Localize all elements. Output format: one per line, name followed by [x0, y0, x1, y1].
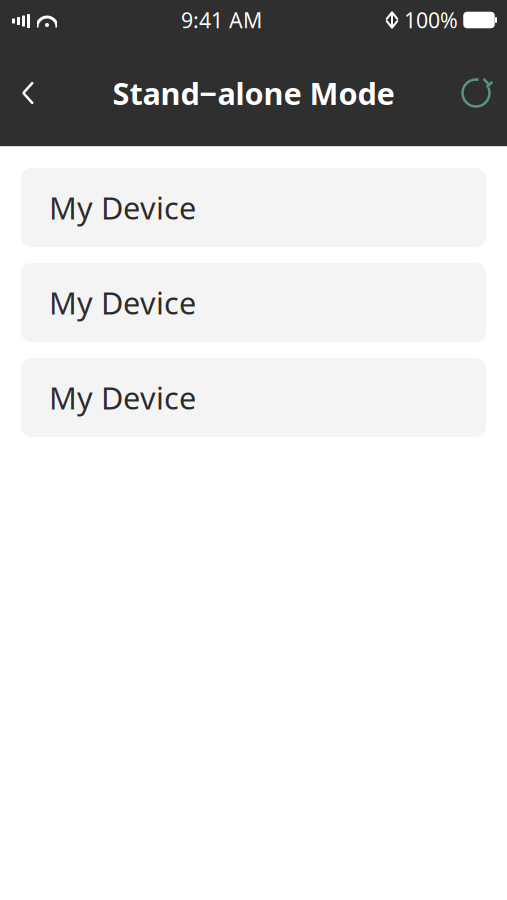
button[interactable]: Refresh: [445, 60, 507, 126]
staticText: My Device: [49, 187, 196, 228]
staticText: 100%: [404, 6, 458, 34]
button[interactable]: Back: [0, 60, 56, 126]
button[interactable]: My Device: [21, 263, 486, 342]
staticText: Stand−alone Mode: [112, 73, 394, 113]
staticText: My Device: [49, 282, 196, 323]
staticText: 9:41 AM: [181, 6, 262, 34]
staticText: My Device: [49, 377, 196, 418]
button[interactable]: My Device: [21, 358, 486, 437]
button[interactable]: My Device: [21, 168, 486, 247]
